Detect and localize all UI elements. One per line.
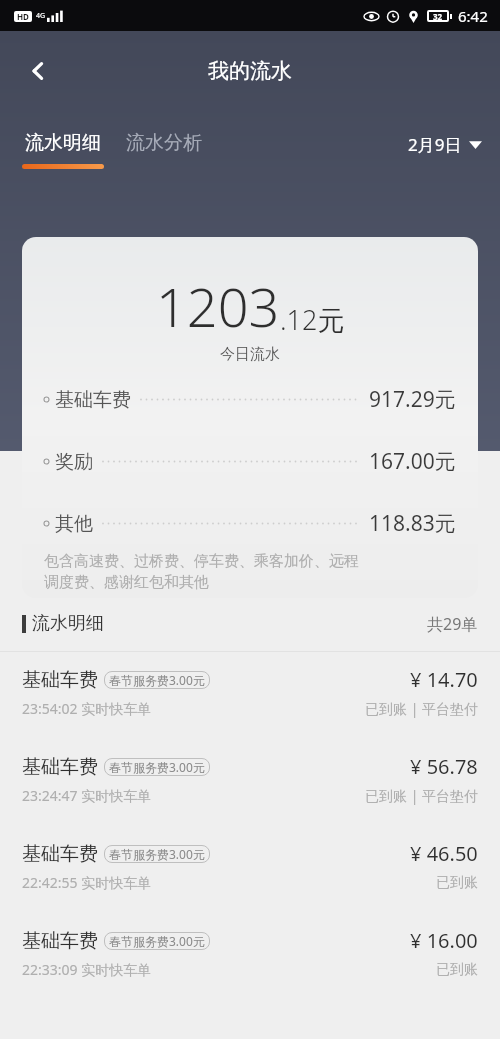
staticText: 23:54:02 实时快车单 [22, 699, 152, 718]
staticText: 118.83元 [369, 509, 456, 538]
staticText: 22:42:55 实时快车单 [22, 873, 152, 892]
staticText: 基础车费 [22, 929, 98, 953]
staticText: 基础车费 [22, 842, 98, 866]
staticText: HD [17, 11, 29, 22]
staticText: 共29单 [427, 613, 478, 635]
staticText: 基础车费 [22, 668, 98, 692]
button[interactable]: 其他 [44, 509, 456, 538]
staticText: 流水明细 [25, 131, 101, 155]
staticText: ¥ 16.00 [410, 927, 478, 954]
staticText: 其他 [55, 512, 93, 536]
button[interactable]: Back [16, 49, 60, 93]
staticText: 今日流水 [22, 345, 478, 364]
button[interactable]: 奖励 [44, 447, 456, 476]
staticText: 基础车费 [55, 388, 131, 412]
button[interactable]: 基础车费 [0, 913, 500, 1000]
staticText: ¥ 14.70 [410, 666, 478, 693]
staticText: 6:42 [458, 6, 488, 26]
button[interactable]: 基础车费 [0, 652, 500, 739]
staticText: 22:33:09 实时快车单 [22, 960, 152, 979]
staticText: 春节服务费3.00元 [109, 846, 205, 862]
staticText: 167.00元 [369, 447, 456, 476]
staticText: 春节服务费3.00元 [109, 759, 205, 775]
staticText: 春节服务费3.00元 [109, 672, 205, 688]
staticText: 基础车费 [22, 755, 98, 779]
staticText: 我的流水 [208, 58, 292, 84]
button[interactable]: 2月9日 [408, 133, 482, 156]
staticText: 917.29元 [369, 385, 456, 414]
staticText: 春节服务费3.00元 [109, 933, 205, 949]
staticText: 流水明细 [32, 612, 104, 635]
button[interactable]: 基础车费 [44, 385, 456, 414]
staticText: 2月9日 [408, 133, 462, 156]
staticText: 1203 [156, 269, 280, 343]
button[interactable]: 基础车费 [0, 739, 500, 826]
staticText: 流水分析 [126, 131, 202, 155]
staticText: 已到账 | 平台垫付 [365, 786, 478, 805]
staticText: 已到账 [436, 874, 478, 892]
staticText: .12元 [280, 301, 345, 338]
staticText: ¥ 56.78 [410, 753, 478, 780]
staticText: 23:24:47 实时快车单 [22, 786, 152, 805]
staticText: 奖励 [55, 450, 93, 474]
staticText: 32 [433, 11, 443, 22]
staticText: 4G [36, 11, 46, 21]
staticText: ¥ 46.50 [410, 840, 478, 867]
staticText: 包含高速费、过桥费、停车费、乘客加价、远程 调度费、感谢红包和其他 [44, 552, 359, 592]
staticText: 已到账 | 平台垫付 [365, 699, 478, 718]
button[interactable]: 基础车费 [0, 826, 500, 913]
button[interactable]: 流水分析 [126, 131, 202, 155]
staticText: 已到账 [436, 961, 478, 979]
button[interactable]: 流水明细 [22, 131, 104, 169]
